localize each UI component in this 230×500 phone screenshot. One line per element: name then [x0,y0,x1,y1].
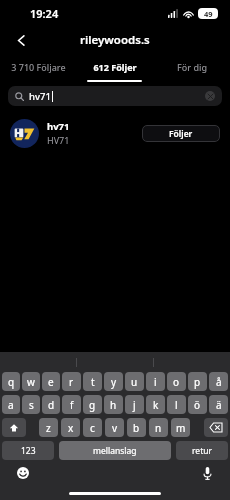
staticText: x [68,421,74,435]
button[interactable]: c [83,418,102,437]
button[interactable]: u [125,372,144,391]
staticText: o [173,375,180,389]
staticText: w [27,375,35,389]
button[interactable]: i [146,372,165,391]
staticText: y [111,375,117,389]
staticText: g [89,398,96,412]
staticText: mellanslag [93,445,137,457]
staticText: m [176,421,186,435]
button[interactable]: ö [188,395,207,414]
staticText: f [70,398,74,412]
staticText: 612 Följer [93,61,137,73]
button[interactable]: Följer [142,125,220,142]
button[interactable]: x [61,418,80,437]
button[interactable]: g [83,395,102,414]
button[interactable]: hv71 [10,116,220,150]
staticText: l [175,398,178,412]
button[interactable]: hv71 [8,86,222,106]
staticText: rileywoods.s [80,32,150,48]
staticText: c [90,421,95,435]
button[interactable]: Emoji [14,464,32,482]
button[interactable]: 3 710 Följare [0,54,76,80]
button[interactable]: s [22,395,40,414]
button[interactable]: retur [176,441,228,460]
staticText: v [112,421,118,435]
button[interactable]: y [104,372,123,391]
button[interactable]: Shift [2,418,26,437]
button[interactable]: å [209,372,228,391]
button[interactable]: w [22,372,40,391]
button[interactable]: För dig [153,54,230,80]
button[interactable]: z [39,418,58,437]
staticText: å [216,375,222,389]
button[interactable]: m [171,418,190,437]
staticText: 49 [204,9,213,19]
staticText: ö [194,398,201,412]
button[interactable]: p [188,372,207,391]
staticText: hv71 [47,120,70,133]
button[interactable]: b [127,418,146,437]
staticText: 3 710 Följare [11,61,66,73]
staticText: k [153,398,159,412]
staticText: h [110,398,117,412]
button[interactable]: t [83,372,102,391]
staticText: q [8,375,15,389]
button[interactable]: Clear search [205,91,215,101]
staticText: a [8,398,14,412]
staticText: i [154,375,157,389]
staticText: retur [192,445,212,457]
staticText: Följer [169,128,193,140]
staticText: e [48,375,54,389]
staticText: d [48,398,55,412]
staticText: HV71 [47,134,70,146]
button[interactable]: mellanslag [59,441,171,460]
staticText: ä [216,398,222,412]
button[interactable]: v [105,418,124,437]
button[interactable]: h [104,395,123,414]
staticText: r [69,375,74,389]
staticText: j [133,398,136,412]
button[interactable]: j [125,395,144,414]
staticText: s [29,398,34,412]
button[interactable]: k [146,395,165,414]
button[interactable]: l [167,395,186,414]
staticText: n [155,421,162,435]
button[interactable]: e [42,372,60,391]
button[interactable]: Voice input [198,464,216,482]
button[interactable]: n [149,418,168,437]
button[interactable]: 123 [2,441,54,460]
staticText: hv71 [29,90,51,103]
staticText: u [131,375,138,389]
button[interactable]: Backspace [204,418,228,437]
button[interactable]: f [62,395,81,414]
staticText: z [46,421,51,435]
button[interactable]: r [62,372,81,391]
button[interactable]: a [2,395,20,414]
button[interactable]: o [167,372,186,391]
button[interactable]: 612 Följer [76,54,153,80]
button[interactable]: d [42,395,60,414]
button[interactable]: ä [209,395,228,414]
staticText: För dig [177,61,207,73]
staticText: 123 [21,445,36,457]
staticText: t [91,375,95,389]
staticText: p [194,375,201,389]
button[interactable]: q [2,372,20,391]
button[interactable]: Back [8,27,34,53]
staticText: 19:24 [30,6,59,21]
staticText: b [133,421,140,435]
